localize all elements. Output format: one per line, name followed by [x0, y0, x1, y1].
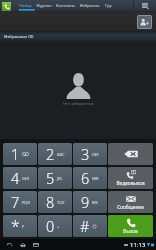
- staticText: 5: [46, 168, 55, 188]
- staticText: ABC: [57, 152, 65, 157]
- button[interactable]: Backspace: [108, 143, 153, 165]
- button[interactable]: 0: [38, 215, 72, 237]
- staticText: Избранное: [79, 3, 100, 8]
- button[interactable]: Call: [108, 215, 153, 237]
- button[interactable]: Phone app: [2, 2, 11, 11]
- button[interactable]: Контакты: [56, 0, 75, 12]
- button[interactable]: Гру: [103, 0, 113, 12]
- staticText: Журналы: [35, 3, 53, 8]
- staticText: Вызов: [123, 228, 138, 234]
- staticText: 2: [46, 144, 55, 164]
- staticText: 0: [46, 216, 55, 236]
- staticText: P: [22, 224, 25, 229]
- button[interactable]: 4: [3, 167, 37, 189]
- button[interactable]: Набор: [17, 0, 33, 12]
- button[interactable]: 8: [38, 191, 72, 213]
- button[interactable]: 2: [38, 143, 72, 165]
- staticText: Избранное (0): [4, 34, 34, 40]
- button[interactable]: Журналы: [35, 0, 53, 12]
- staticText: WXYZ: [92, 200, 100, 205]
- staticText: 9: [81, 192, 90, 212]
- button[interactable]: *: [3, 215, 37, 237]
- button[interactable]: Video call: [108, 167, 153, 189]
- staticText: DEF: [92, 152, 100, 157]
- button[interactable]: Dialpad options: [134, 0, 156, 12]
- staticText: GHI: [22, 176, 30, 181]
- button[interactable]: 3: [73, 143, 107, 165]
- staticText: 1: [11, 144, 20, 164]
- button[interactable]: Home: [16, 239, 29, 250]
- staticText: Контакты: [56, 3, 75, 8]
- button[interactable]: Add to contacts: [137, 15, 152, 29]
- button[interactable]: Recent apps: [29, 239, 42, 250]
- staticText: #: [80, 216, 90, 236]
- staticText: 7: [11, 192, 20, 212]
- button[interactable]: Избранное: [79, 0, 100, 12]
- staticText: 11:13: [130, 241, 146, 249]
- button[interactable]: Back: [3, 239, 16, 250]
- button[interactable]: 1: [3, 143, 37, 165]
- button[interactable]: 5: [38, 167, 72, 189]
- staticText: Сообщение: [117, 204, 144, 210]
- staticText: 4: [11, 168, 20, 188]
- staticText: Видеовызов: [116, 180, 145, 186]
- staticText: JKL: [57, 176, 63, 181]
- staticText: MNO: [92, 176, 100, 181]
- staticText: PQRS: [22, 200, 30, 205]
- staticText: 6: [81, 168, 90, 188]
- staticText: Гру: [105, 3, 112, 8]
- button[interactable]: 7: [3, 191, 37, 213]
- staticText: 8: [46, 192, 55, 212]
- staticText: TUV: [57, 200, 65, 205]
- button[interactable]: #: [73, 215, 107, 237]
- staticText: *: [11, 215, 20, 237]
- staticText: Нет избранных: [63, 101, 94, 107]
- button[interactable]: 6: [73, 167, 107, 189]
- staticText: +: [57, 224, 60, 229]
- button[interactable]: Message: [108, 191, 153, 213]
- staticText: 3: [81, 144, 90, 164]
- button[interactable]: 9: [73, 191, 107, 213]
- staticText: Набор: [19, 3, 32, 8]
